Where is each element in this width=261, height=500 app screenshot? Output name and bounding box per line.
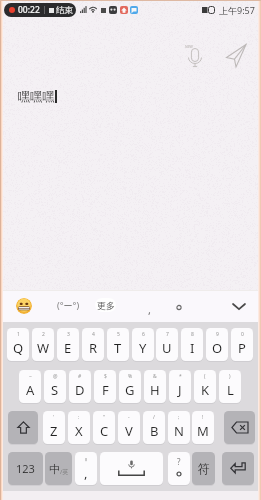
staticText: 2 [42,331,45,338]
button[interactable]: J [169,370,191,403]
staticText: N [174,422,184,440]
staticText: U [162,339,172,357]
staticText: * [179,373,182,380]
button[interactable]: T [107,328,129,361]
staticText: # [78,373,82,380]
staticText: K [201,381,210,399]
staticText: W [37,339,50,357]
staticText: 1 [17,331,20,338]
staticText: P [238,339,246,357]
staticText: L [227,381,234,399]
staticText: ; [178,414,180,421]
staticText: 123 [16,461,35,476]
button[interactable]: 00:22 [4,3,76,17]
staticText: Z [50,422,58,440]
button[interactable]: Q [7,328,29,361]
button[interactable]: V [118,411,140,444]
button[interactable]: S [44,370,66,403]
button[interactable]: A [19,370,41,403]
staticText: , [148,302,151,317]
button[interactable]: U [156,328,178,361]
staticText: X [75,422,83,440]
button[interactable]: D [69,370,91,403]
staticText: 符 [198,461,210,476]
staticText: /英 [60,468,69,476]
button[interactable]: R [82,328,104,361]
staticText: : [78,414,80,421]
staticText: 更多 [97,300,115,311]
staticText: 上午9:57 [219,4,255,16]
staticText: - [128,414,130,421]
button[interactable] [100,452,163,485]
staticText: I [190,339,195,357]
staticText: O [212,339,223,357]
button[interactable] [8,411,38,444]
button[interactable]: P [231,328,253,361]
button[interactable]: 中 [45,452,72,485]
button[interactable]: Hide keyboard [228,295,250,317]
staticText: @ [53,373,58,380]
staticText: ) [229,373,231,380]
staticText: 00:22 [18,4,40,16]
staticText: ' [53,414,55,421]
staticText: 7 [166,331,169,338]
button[interactable]: I [181,328,203,361]
staticText: 4 [92,331,95,338]
button[interactable]: Y [132,328,154,361]
button[interactable]: (°ー°) [54,298,82,312]
button[interactable]: Emoji [16,298,32,314]
staticText: F [102,381,109,399]
staticText: ! [202,414,204,421]
staticText: , [84,464,88,482]
button[interactable]: , [141,296,157,316]
staticText: 9 [216,331,219,338]
staticText: 中 [49,462,60,476]
staticText: R [89,339,98,357]
button[interactable]: H [144,370,166,403]
button[interactable]: 符 [192,452,215,485]
button[interactable]: 123 [8,452,43,485]
staticText: 5 [117,331,120,338]
staticText: ? [177,456,181,467]
button[interactable] [222,452,254,485]
staticText: 8 [191,331,194,338]
button[interactable]: K [194,370,216,403]
staticText: (°ー°) [57,299,80,311]
staticText: T [114,339,122,357]
button[interactable]: 更多 [95,298,116,312]
button[interactable]: Z [43,411,65,444]
button[interactable]: Voice input [184,40,212,68]
button[interactable]: W [32,328,54,361]
button[interactable]: , [75,452,97,485]
staticText: ~ [29,373,32,380]
button[interactable]: M [192,411,214,444]
button[interactable]: ? [168,452,190,485]
button[interactable] [224,411,255,444]
button[interactable]: C [93,411,115,444]
staticText: A [26,381,35,399]
staticText: " [103,414,106,421]
staticText: $ [104,373,107,380]
staticText: J [178,381,182,399]
button[interactable]: L [219,370,241,403]
button[interactable]: B [143,411,165,444]
staticText: D [75,381,85,399]
button[interactable]: O [206,328,228,361]
staticText: H [150,381,160,399]
staticText: Y [139,339,147,357]
button[interactable]: Send [225,42,255,72]
button[interactable]: X [68,411,90,444]
staticText: B [150,422,159,440]
button[interactable]: E [57,328,79,361]
button[interactable]: F [94,370,116,403]
staticText: & [153,373,157,380]
staticText: % [128,373,133,380]
button[interactable]: G [119,370,141,403]
staticText: 3 [67,331,70,338]
button[interactable]: N [168,411,190,444]
staticText: 0 [241,331,244,338]
button[interactable] [171,296,187,316]
staticText: / [153,414,155,421]
staticText: S [51,381,59,399]
staticText: M [197,422,209,440]
